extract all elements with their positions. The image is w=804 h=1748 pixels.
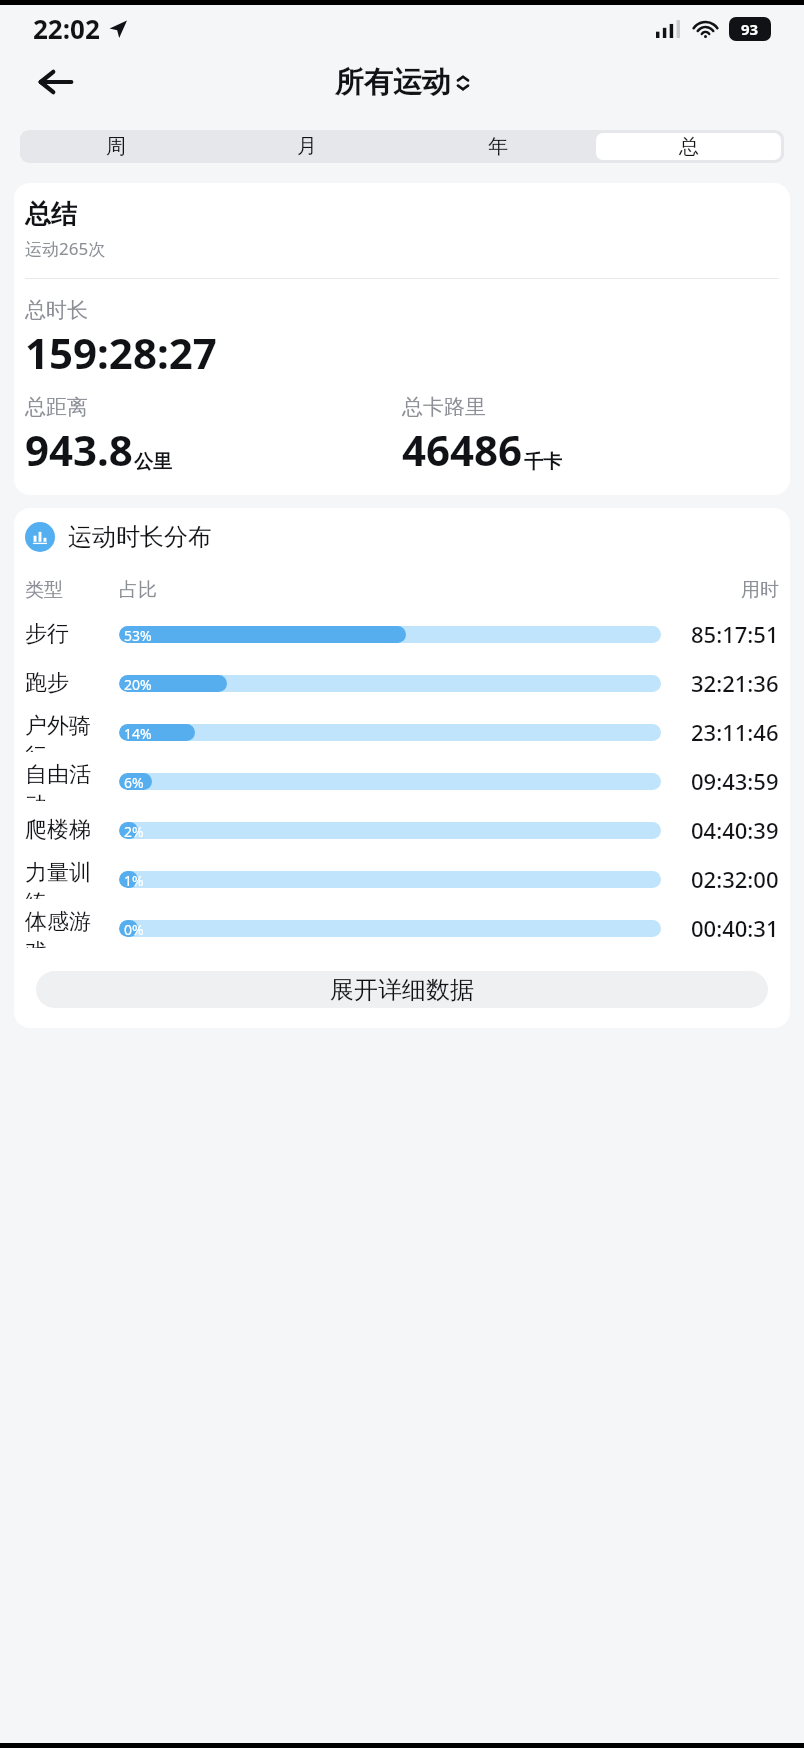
staticText: 年 xyxy=(488,134,508,159)
staticText: 159:28:27 xyxy=(25,324,217,381)
button[interactable]: Back xyxy=(28,54,84,110)
staticText: 14% xyxy=(124,724,152,741)
staticText: 32:21:36 xyxy=(691,668,779,698)
staticText: 用时 xyxy=(741,578,779,602)
staticText: 力量训练 xyxy=(25,859,110,899)
staticText: 户外骑行 xyxy=(25,712,110,752)
staticText: 02:32:00 xyxy=(691,864,779,894)
staticText: 运动265次 xyxy=(25,237,106,260)
staticText: 总 xyxy=(679,134,699,159)
staticText: 爬楼梯 xyxy=(25,816,91,844)
staticText: 04:40:39 xyxy=(691,815,779,845)
staticText: 步行 xyxy=(25,620,69,648)
staticText: 1% xyxy=(124,871,144,888)
staticText: 85:17:51 xyxy=(691,619,779,649)
staticText: 总距离 xyxy=(25,394,88,420)
button[interactable]: 所有运动 xyxy=(335,64,470,101)
staticText: 总卡路里 xyxy=(402,394,486,420)
staticText: 2% xyxy=(124,822,144,839)
staticText: 00:40:31 xyxy=(691,913,779,943)
staticText: 月 xyxy=(297,134,317,159)
staticText: 公里 xyxy=(134,450,172,474)
staticText: 53% xyxy=(124,626,152,643)
staticText: 运动时长分布 xyxy=(68,522,212,552)
staticText: 体感游戏 xyxy=(25,908,110,948)
button[interactable]: 周 xyxy=(23,133,208,160)
staticText: 周 xyxy=(106,134,126,159)
staticText: 总时长 xyxy=(25,297,88,323)
button[interactable]: 年 xyxy=(405,133,590,160)
staticText: 22:02 xyxy=(33,11,100,46)
staticText: 总结 xyxy=(25,198,77,231)
staticText: 6% xyxy=(124,773,144,790)
staticText: 20% xyxy=(124,675,152,692)
staticText: 943.8 xyxy=(25,421,133,478)
button[interactable]: 总 xyxy=(596,133,781,160)
staticText: 0% xyxy=(124,920,144,937)
button[interactable]: 展开详细数据 xyxy=(36,971,768,1008)
staticText: 占比 xyxy=(119,578,157,602)
staticText: 自由活动 xyxy=(25,761,110,801)
staticText: 千卡 xyxy=(524,450,562,474)
staticText: 09:43:59 xyxy=(691,766,779,796)
staticText: 跑步 xyxy=(25,669,69,697)
staticText: 46486 xyxy=(402,421,523,478)
staticText: 所有运动 xyxy=(335,64,451,101)
staticText: 93 xyxy=(741,19,759,39)
staticText: 类型 xyxy=(25,578,63,602)
button[interactable]: 月 xyxy=(214,133,399,160)
staticText: 展开详细数据 xyxy=(330,975,474,1005)
staticText: 23:11:46 xyxy=(691,717,779,747)
